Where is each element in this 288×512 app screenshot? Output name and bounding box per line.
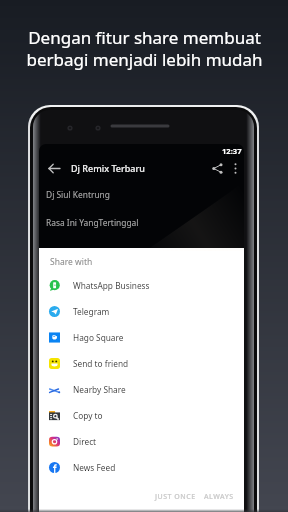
staticText: Share with (50, 256, 93, 268)
staticText: Nearby Share (73, 384, 126, 395)
staticText: Copy to (73, 410, 103, 421)
staticText: ALWAYS (204, 492, 234, 502)
button[interactable]: News Feed (39, 454, 244, 480)
staticText: Dj Remix Terbaru (71, 162, 145, 174)
button[interactable]: Hago Square (39, 324, 244, 350)
staticText: WhatsApp Business (73, 280, 150, 291)
button[interactable]: Nearby Share (39, 376, 244, 402)
button[interactable]: JUST ONCE (152, 490, 199, 504)
button[interactable]: WhatsApp Business (39, 272, 244, 298)
staticText: News Feed (73, 462, 116, 473)
button[interactable]: More options (226, 159, 244, 177)
staticText: Send to friend (73, 358, 129, 369)
button[interactable]: Copy to (39, 402, 244, 428)
button[interactable]: Telegram (39, 298, 244, 324)
button[interactable]: ALWAYS (201, 490, 237, 504)
staticText: Dengan fitur share membuat (28, 26, 261, 49)
button[interactable]: Share (208, 159, 226, 177)
button[interactable]: Back (45, 159, 63, 177)
staticText: JUST ONCE (155, 492, 196, 502)
staticText: 12:37 (222, 146, 242, 156)
button[interactable]: Send to friend (39, 350, 244, 376)
staticText: Rasa Ini YangTertinggal (46, 217, 139, 228)
staticText: Direct (73, 436, 97, 447)
staticText: Hago Square (73, 332, 124, 343)
staticText: Telegram (73, 306, 110, 317)
staticText: Dj Siul Kentrung (46, 189, 110, 200)
staticText: berbagi menjadi lebih mudah (26, 48, 263, 71)
button[interactable]: Direct (39, 428, 244, 454)
